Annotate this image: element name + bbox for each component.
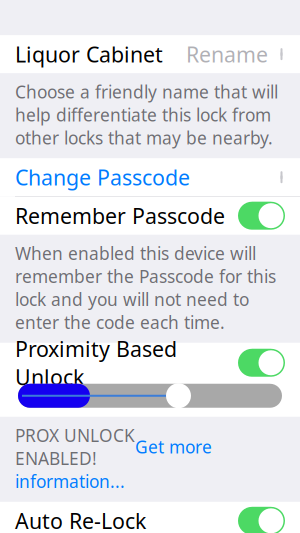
staticText: Remember Passcode xyxy=(15,201,225,230)
button[interactable]: information... xyxy=(15,470,125,493)
button[interactable]: Toggle xyxy=(238,349,285,377)
staticText: PROX UNLOCK ENABLED! xyxy=(15,424,135,470)
button[interactable]: Toggle xyxy=(238,202,285,230)
staticText: Proximity Based Unlock xyxy=(15,334,177,391)
staticText: Rename xyxy=(186,40,268,68)
staticText: information... xyxy=(15,470,125,493)
button[interactable]: Toggle xyxy=(238,507,285,533)
staticText: Liquor Cabinet xyxy=(15,40,163,68)
staticText: Get more xyxy=(135,435,212,458)
button[interactable]: Liquor Cabinet xyxy=(0,35,300,73)
staticText: Auto Re-Lock xyxy=(15,507,146,533)
button[interactable]: Remember Passcode xyxy=(0,197,300,235)
button[interactable]: Change Passcode xyxy=(0,158,300,196)
button[interactable]: Auto Re-Lock xyxy=(0,502,300,533)
button[interactable]: Get more xyxy=(135,435,212,458)
staticText: Change Passcode xyxy=(15,163,190,191)
staticText: When enabled this device will remember t… xyxy=(15,242,276,334)
staticText: Choose a friendly name that will help di… xyxy=(15,80,278,149)
